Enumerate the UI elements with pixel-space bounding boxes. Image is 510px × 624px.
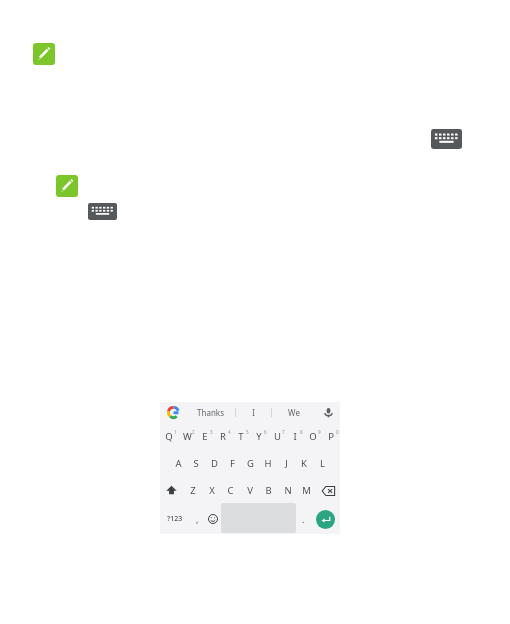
button[interactable]: B <box>259 477 278 504</box>
button[interactable]: , <box>189 504 205 534</box>
button[interactable]: Q <box>160 423 178 450</box>
button[interactable]: N <box>278 477 297 504</box>
staticText: T <box>238 430 244 443</box>
staticText: W <box>183 430 192 443</box>
staticText: P <box>328 430 334 443</box>
staticText: F <box>230 457 235 470</box>
button[interactable]: I <box>236 402 271 423</box>
button[interactable]: I <box>286 423 304 450</box>
staticText: B <box>265 484 272 497</box>
button[interactable]: Voice input <box>316 402 340 423</box>
button[interactable]: D <box>205 450 223 477</box>
staticText: J <box>285 457 288 470</box>
button[interactable]: K <box>295 450 313 477</box>
staticText: Thanks <box>197 407 224 418</box>
button[interactable]: O <box>304 423 322 450</box>
button[interactable]: F <box>223 450 241 477</box>
button[interactable]: W <box>178 423 196 450</box>
staticText: Z <box>190 484 196 497</box>
staticText: 6 <box>264 429 267 435</box>
button[interactable]: U <box>268 423 286 450</box>
staticText: 1 <box>174 429 177 435</box>
staticText: U <box>274 430 281 443</box>
button[interactable]: P <box>322 423 340 450</box>
staticText: O <box>309 430 317 443</box>
staticText: G <box>247 457 254 470</box>
button[interactable]: R <box>214 423 232 450</box>
staticText: 3 <box>210 429 213 435</box>
staticText: V <box>247 484 253 497</box>
button[interactable]: Google <box>160 402 186 423</box>
staticText: Y <box>256 430 262 443</box>
staticText: K <box>301 457 307 470</box>
button[interactable]: V <box>240 477 259 504</box>
button[interactable]: T <box>232 423 250 450</box>
button[interactable]: Emoji <box>205 504 221 534</box>
button[interactable]: . <box>296 504 311 534</box>
button[interactable]: C <box>221 477 240 504</box>
button[interactable]: We <box>272 402 316 423</box>
button[interactable]: Compose <box>33 43 55 65</box>
staticText: M <box>302 484 311 497</box>
staticText: L <box>320 457 325 470</box>
button[interactable]: E <box>196 423 214 450</box>
staticText: . <box>302 513 305 525</box>
button[interactable]: Space <box>221 504 296 534</box>
staticText: D <box>211 457 218 470</box>
button[interactable]: A <box>169 450 187 477</box>
staticText: X <box>209 484 215 497</box>
button[interactable]: Z <box>183 477 202 504</box>
staticText: R <box>220 430 226 443</box>
button[interactable]: M <box>297 477 316 504</box>
staticText: E <box>202 430 208 443</box>
staticText: Q <box>165 430 173 443</box>
button[interactable]: ?123 <box>160 504 189 534</box>
staticText: S <box>193 457 199 470</box>
button[interactable]: Y <box>250 423 268 450</box>
staticText: I <box>252 407 255 418</box>
button[interactable]: J <box>277 450 295 477</box>
button[interactable]: L <box>313 450 331 477</box>
button[interactable]: G <box>241 450 259 477</box>
staticText: We <box>288 407 300 418</box>
button[interactable]: Thanks <box>186 402 235 423</box>
button[interactable]: S <box>187 450 205 477</box>
button[interactable]: Shift <box>160 477 183 504</box>
button[interactable]: X <box>202 477 221 504</box>
staticText: A <box>175 457 182 470</box>
staticText: ?123 <box>167 514 183 524</box>
staticText: 2 <box>192 429 195 435</box>
button[interactable]: Backspace <box>316 477 340 504</box>
button[interactable]: Keyboard <box>431 129 462 149</box>
staticText: 0 <box>336 429 339 435</box>
staticText: 7 <box>282 429 285 435</box>
staticText: 5 <box>246 429 249 435</box>
staticText: 4 <box>228 429 231 435</box>
staticText: 9 <box>318 429 321 435</box>
button[interactable]: Enter <box>311 504 340 534</box>
staticText: I <box>293 430 297 443</box>
staticText: N <box>284 484 292 497</box>
button[interactable]: Compose note <box>56 175 78 197</box>
button[interactable]: H <box>259 450 277 477</box>
staticText: , <box>196 513 199 525</box>
button[interactable]: Show keyboard <box>88 203 117 220</box>
staticText: H <box>264 457 272 470</box>
staticText: 8 <box>300 429 303 435</box>
staticText: C <box>227 484 234 497</box>
